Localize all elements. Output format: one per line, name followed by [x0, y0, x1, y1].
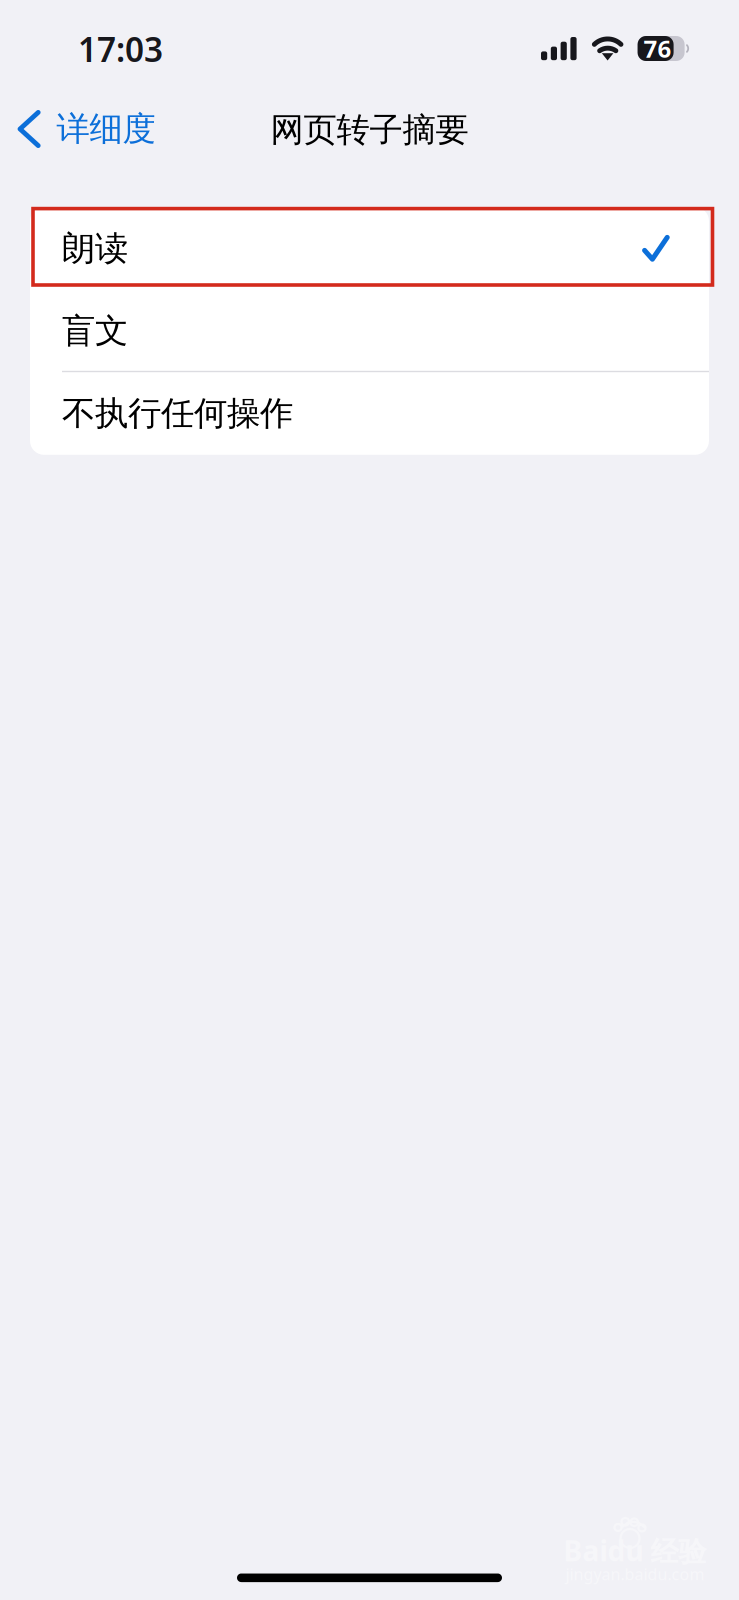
button[interactable]: 朗读 — [30, 207, 709, 290]
button[interactable]: 不执行任何操作 — [30, 372, 709, 455]
staticText: 17:03 — [78, 27, 163, 71]
button[interactable]: 盲文 — [30, 290, 709, 372]
staticText: 朗读 — [62, 228, 128, 269]
button[interactable]: 详细度 — [5, 99, 195, 159]
staticText: 不执行任何操作 — [62, 393, 293, 434]
staticText: 盲文 — [62, 310, 128, 351]
staticText: 详细度 — [56, 108, 155, 149]
staticText: 76 — [644, 33, 672, 64]
staticText: 网页转子摘要 — [270, 109, 468, 150]
